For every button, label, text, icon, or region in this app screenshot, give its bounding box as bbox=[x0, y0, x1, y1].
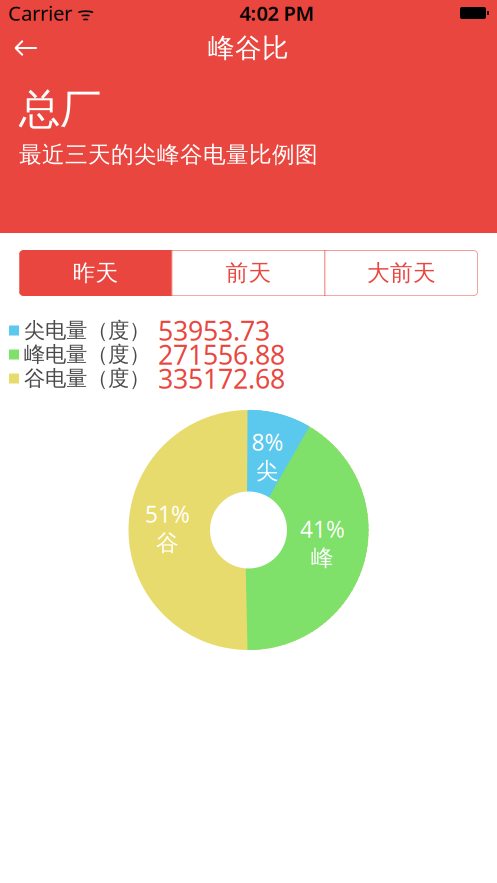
staticText: 335172.68 bbox=[158, 361, 285, 396]
button[interactable]: 大前天 bbox=[325, 250, 477, 296]
staticText: 4:02 PM bbox=[239, 0, 314, 26]
staticText: 峰电量（度） bbox=[24, 341, 150, 368]
button[interactable]: 昨天 bbox=[19, 250, 171, 296]
staticText: 谷 bbox=[156, 529, 179, 557]
staticText: 昨天 bbox=[72, 259, 118, 287]
staticText: 53953.73 bbox=[158, 313, 270, 348]
staticText: Carrier bbox=[8, 0, 72, 26]
staticText: 最近三天的尖峰谷电量比例图 bbox=[19, 141, 318, 169]
staticText: 总厂 bbox=[19, 84, 101, 135]
staticText: 尖 bbox=[256, 457, 279, 485]
staticText: 峰谷比 bbox=[208, 32, 289, 64]
staticText: ᯤ bbox=[72, 1, 94, 25]
staticText: 271556.88 bbox=[158, 337, 285, 372]
staticText: 51% bbox=[145, 499, 190, 529]
staticText: 谷电量（度） bbox=[24, 365, 150, 392]
staticText: 峰 bbox=[311, 544, 334, 572]
button[interactable]: 前天 bbox=[172, 250, 324, 296]
staticText: 前天 bbox=[225, 259, 271, 287]
staticText: 8% bbox=[251, 427, 283, 457]
staticText: 尖电量（度） bbox=[24, 317, 150, 344]
button[interactable]: Back bbox=[0, 26, 48, 70]
staticText: 大前天 bbox=[367, 259, 436, 287]
staticText: 41% bbox=[300, 514, 345, 544]
